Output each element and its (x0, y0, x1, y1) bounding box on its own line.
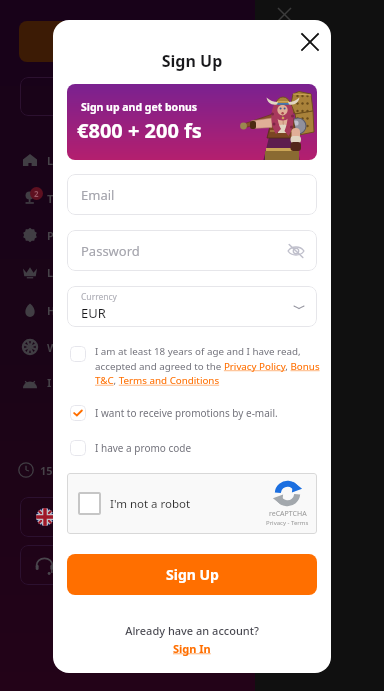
staticText: I have a promo code (95, 441, 192, 455)
button[interactable]: I am at least 18 years of age and I have… (70, 345, 320, 387)
button[interactable]: L (22, 262, 56, 282)
button[interactable]: Show password (286, 241, 306, 261)
staticText: Email (81, 186, 115, 204)
button[interactable]: W (22, 337, 56, 357)
staticText: W (47, 340, 56, 355)
staticText: I am at least 18 years of age and I have… (95, 345, 320, 387)
button[interactable]: I have a promo code (70, 438, 320, 458)
staticText: Currency (81, 291, 117, 303)
button[interactable]: Sign In (173, 641, 211, 656)
staticText: I want to receive promotions by e-mail. (95, 406, 278, 420)
button[interactable]: L (22, 150, 56, 170)
button[interactable]: Password (67, 230, 317, 271)
staticText: Sign In (173, 641, 211, 656)
staticText: H (47, 303, 56, 318)
button[interactable]: Support (20, 545, 84, 585)
button[interactable]: In (22, 375, 56, 395)
staticText: Privacy - Terms (266, 519, 309, 527)
staticText: In (47, 375, 56, 395)
staticText: Already have an account? (53, 623, 331, 638)
staticText: reCAPTCHA (269, 509, 307, 519)
button[interactable]: P (22, 225, 56, 245)
staticText: EUR (81, 304, 106, 322)
button[interactable]: Sign up and get bonus (67, 84, 317, 160)
staticText: 15 (40, 463, 53, 478)
staticText: Sign up and get bonus (81, 100, 198, 114)
button[interactable]: I'm not a robot (67, 473, 317, 534)
button[interactable]: Email (67, 174, 317, 215)
button[interactable]: I want to receive promotions by e-mail. (70, 403, 320, 423)
staticText: T (47, 191, 54, 206)
staticText: Sign Up (53, 50, 331, 72)
staticText: L (47, 265, 54, 280)
staticText: L (47, 153, 54, 168)
button[interactable]: T (22, 188, 56, 208)
button[interactable]: H (22, 300, 56, 320)
staticText: Password (81, 242, 140, 260)
staticText: I'm not a robot (110, 496, 191, 512)
staticText: 2 (34, 188, 39, 199)
staticText: P (47, 228, 54, 243)
staticText: Sign Up (166, 565, 219, 584)
button[interactable]: Language (20, 497, 84, 537)
button[interactable]: Close (294, 26, 326, 58)
staticText: €800 + 200 fs (77, 117, 202, 144)
button[interactable]: Sign Up (67, 554, 317, 595)
button[interactable]: Currency (67, 286, 317, 327)
